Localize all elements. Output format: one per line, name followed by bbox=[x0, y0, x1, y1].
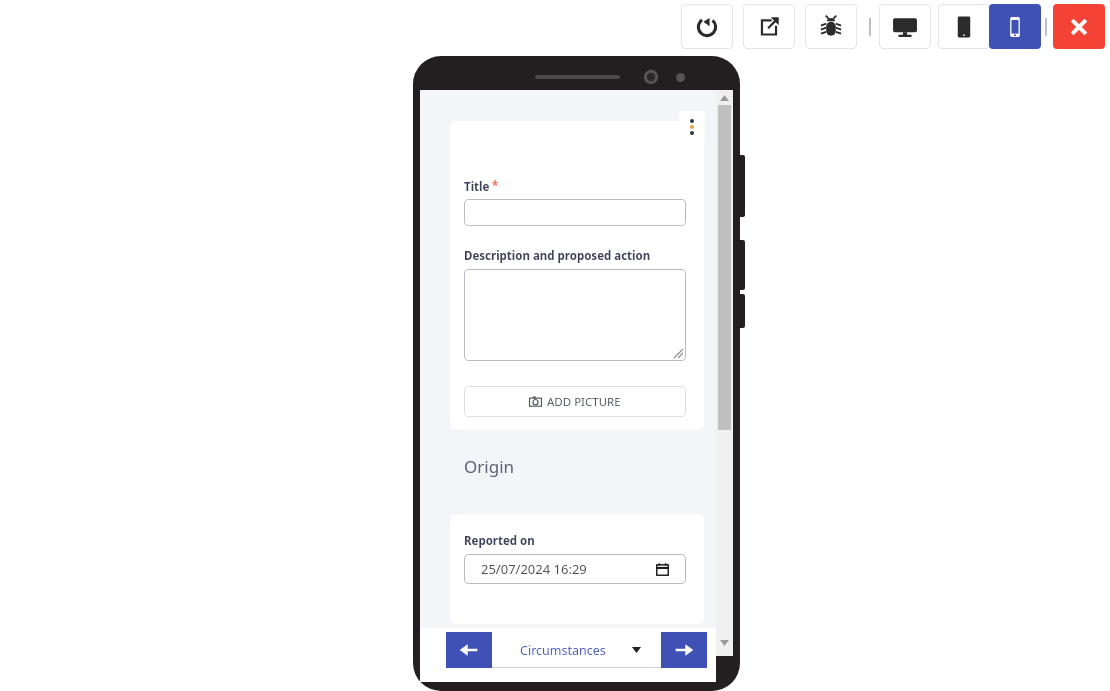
button[interactable] bbox=[464, 269, 686, 361]
button[interactable]: Circumstances bbox=[492, 632, 661, 668]
button[interactable]: Toolbar action bbox=[805, 4, 857, 49]
button[interactable]: Toolbar action bbox=[1053, 4, 1105, 49]
staticText: * bbox=[492, 178, 499, 194]
staticText: ADD PICTURE bbox=[547, 394, 621, 410]
staticText: Reported on bbox=[464, 533, 535, 549]
button[interactable]: Toolbar action bbox=[879, 4, 931, 49]
staticText: Origin bbox=[464, 455, 515, 478]
button[interactable]: Toolbar action bbox=[681, 4, 733, 49]
staticText: Circumstances bbox=[520, 642, 606, 659]
button[interactable]: Toolbar action bbox=[938, 4, 990, 49]
button[interactable]: 25/07/2024 16:29 bbox=[464, 554, 686, 584]
staticText: Description and proposed action bbox=[464, 248, 651, 264]
button[interactable]: Previous bbox=[446, 632, 492, 668]
button[interactable]: Toolbar action bbox=[743, 4, 795, 49]
button[interactable]: Toolbar action bbox=[989, 4, 1041, 49]
button[interactable]: More options bbox=[679, 111, 705, 143]
button[interactable]: Next bbox=[661, 632, 707, 668]
staticText: Title bbox=[464, 179, 490, 195]
button[interactable] bbox=[464, 199, 686, 226]
button[interactable]: ADD PICTURE bbox=[464, 386, 686, 417]
staticText: 25/07/2024 16:29 bbox=[481, 560, 587, 578]
